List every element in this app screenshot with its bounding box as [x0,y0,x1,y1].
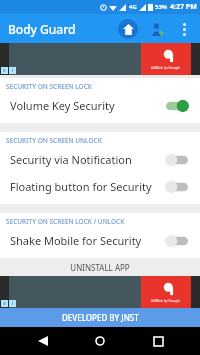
staticText: x [3,67,6,74]
button[interactable]: Home [85,327,115,355]
button[interactable]: Floating button for Security [0,173,200,200]
staticText: SECURITY ON SCREEN UNLOCK [6,136,102,145]
staticText: i [12,67,14,74]
button[interactable]: Back [28,327,58,355]
staticText: 4:27 PM [170,2,197,12]
button[interactable]: UNINSTALL APP [0,258,200,276]
staticText: 4G [129,3,137,11]
staticText: i [12,300,14,307]
button[interactable]: Volume Key Security [0,92,200,119]
staticText: x [3,300,6,307]
button[interactable]: Home [118,19,138,39]
staticText: UNINSTALL APP [70,262,130,273]
staticText: 53% [155,3,168,11]
staticText: AdMob by Google [151,65,181,70]
staticText: SECURITY ON SCREEN LOCK [6,82,92,91]
staticText: Volume Key Security [10,98,115,113]
staticText: Security via Notification [10,152,132,167]
button[interactable]: Security via Notification [0,146,200,173]
staticText: Body Guard [8,21,76,37]
button[interactable]: More options [176,21,192,37]
staticText: Floating button for Security [10,179,152,194]
button[interactable]: Shake Mobile for Security [0,227,200,254]
staticText: DEVELOPED BY JNST [62,312,139,323]
button[interactable]: Recent apps [143,327,173,355]
staticText: SECURITY ON SCREEN LOCK / UNLOCK [6,217,125,226]
button[interactable]: Add person [148,20,166,38]
staticText: Shake Mobile for Security [10,233,142,248]
staticText: AdMob by Google [151,298,181,303]
